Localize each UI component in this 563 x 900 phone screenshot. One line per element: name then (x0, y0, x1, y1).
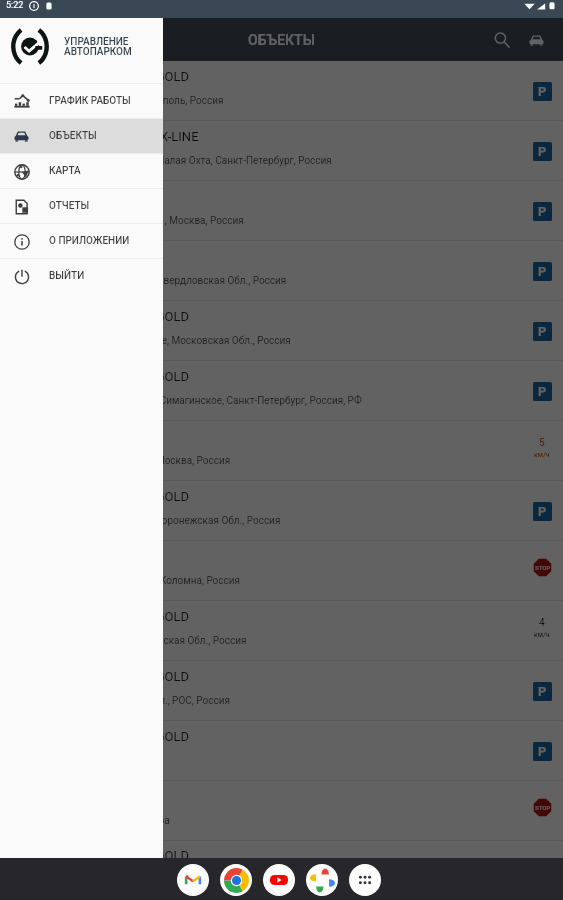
staticText: STOP (535, 564, 551, 571)
staticText: км/ч (534, 451, 550, 459)
staticText: Х 123 УК 77 / HOWO A7 GOLD (12, 69, 189, 84)
staticText: Ставропольский край, г. Ставрополь, Росс… (12, 95, 224, 107)
staticText: Пресненский р-н, ул. Садовая 81, Москва,… (12, 215, 244, 227)
button[interactable]: Vehicles (519, 23, 553, 57)
button[interactable]: Gmail (177, 864, 209, 896)
button[interactable]: YouTube (263, 864, 295, 896)
staticText: М 789 ВТ 45 / VOLVO FH X-LINE (12, 129, 199, 144)
button[interactable]: Х 123 УК 77 / HOWO A7 GOLD (0, 661, 563, 721)
staticText: P (538, 384, 547, 399)
staticText: О ПРИЛОЖЕНИИ (49, 235, 130, 247)
button[interactable]: О ПРИЛОЖЕНИИ (0, 224, 163, 258)
staticText: Х 123 УК 77 / HOWO A7 GOLD (12, 489, 189, 504)
button[interactable]: Chrome (220, 864, 252, 896)
button[interactable]: Х 123 УК 77 / HOWO A7 GOLD (0, 301, 563, 361)
staticText: ОБЪЕКТЫ (248, 32, 315, 48)
button[interactable]: А 998 МТ 02 / MAZ 5440 (0, 781, 563, 841)
staticText: Х 123 УК 77 / HOWO A7 GOLD (12, 669, 189, 684)
staticText: Раменское городское поселение, Московска… (12, 335, 291, 347)
staticText: P (538, 204, 547, 219)
staticText: P (538, 684, 547, 699)
button[interactable]: ОБЪЕКТЫ (0, 119, 163, 153)
staticText: Павловский район, Павловск, Воронежская … (12, 515, 281, 527)
staticText: Коломенский городской округ, Коломна, Ро… (12, 575, 241, 587)
staticText: ВЫЙТИ (49, 270, 85, 282)
button[interactable]: ГРАФИК РАБОТЫ (0, 84, 163, 118)
staticText: P (538, 144, 547, 159)
staticText: Х 123 УК 77 / HOWO A7 GOLD (12, 848, 189, 863)
staticText: 4 (539, 617, 545, 629)
button[interactable]: Х 123 УК 77 / HOWO A7 GOLD (0, 61, 563, 121)
button[interactable]: Х 123 УК 77 / HOWO A7 GOLD (0, 841, 563, 900)
staticText: Варшавское шоссе 35 корп. 1, Москва, Рос… (12, 455, 231, 467)
staticText: ОБЪЕКТЫ (49, 130, 97, 142)
staticText: P (538, 264, 547, 279)
staticText: 5 (539, 437, 545, 449)
button[interactable]: Т 333 ЕЕ 78 / SCANIA R (0, 181, 563, 241)
staticText: Х 123 УК 77 / HOWO A7 GOLD (12, 369, 189, 384)
button[interactable]: Х 123 УК 77 / HOWO A7 GOLD (0, 601, 563, 661)
staticText: Выборгский р-н, посёлок округ Симагинско… (12, 395, 362, 407)
button[interactable]: Search (485, 23, 519, 57)
button[interactable]: Х 123 УК 77 / HOWO A7 GOLD (0, 361, 563, 421)
button[interactable]: All apps (349, 864, 381, 896)
button[interactable]: О 741 КМ 96 / MAN TGX (0, 241, 563, 301)
staticText: STOP (535, 804, 551, 811)
button[interactable]: Photos (306, 864, 338, 896)
button[interactable]: ОТЧЕТЫ (0, 189, 163, 223)
staticText: Х 123 УК 77 / HOWO A7 GOLD (12, 309, 189, 324)
staticText: ГРАФИК РАБОТЫ (49, 95, 131, 107)
button[interactable]: Н 565 ОР 16 / КАМАЗ (0, 421, 563, 481)
staticText: 5:22 (6, 0, 24, 11)
staticText: P (538, 324, 547, 339)
button[interactable]: М 789 ВТ 45 / VOLVO FH X-LINE (0, 121, 563, 181)
staticText: Х 123 УК 77 / HOWO A7 GOLD (12, 609, 189, 624)
staticText: Х 123 УК 77 / HOWO A7 GOLD (12, 729, 189, 744)
staticText: Ростов-на-Дону, Ростовская Обл., РОС, Ро… (12, 695, 230, 707)
staticText: Берёзовский городской округ, Свердловска… (12, 275, 287, 287)
button[interactable]: КАРТА (0, 154, 163, 188)
button[interactable]: Х 123 УК 77 / HOWO A7 GOLD (0, 481, 563, 541)
staticText: КАРТА (49, 165, 81, 177)
staticText: О 741 КМ 96 / MAN TGX (12, 249, 156, 264)
staticText: Республика Башкортостан, г. Уфа (12, 815, 170, 827)
staticText: Т 333 ЕЕ 78 / SCANIA R (12, 189, 150, 204)
staticText: Городской округ Химки, Московская Обл., … (12, 635, 247, 647)
button[interactable]: Х 123 УК 77 / HOWO A7 GOLD (0, 721, 563, 781)
staticText: Красногвардейский р-н, округ Малая Охта,… (12, 155, 332, 167)
button[interactable]: ВЫЙТИ (0, 259, 163, 293)
staticText: км/ч (534, 631, 550, 639)
button[interactable]: В 321 АС 50 / DAF XF (0, 541, 563, 601)
staticText: ОТЧЕТЫ (49, 200, 90, 212)
staticText: P (538, 504, 547, 519)
staticText: P (538, 84, 547, 99)
staticText: УПРАВЛЕНИЕ АВТОПАРКОМ (64, 36, 132, 58)
staticText: P (538, 744, 547, 759)
